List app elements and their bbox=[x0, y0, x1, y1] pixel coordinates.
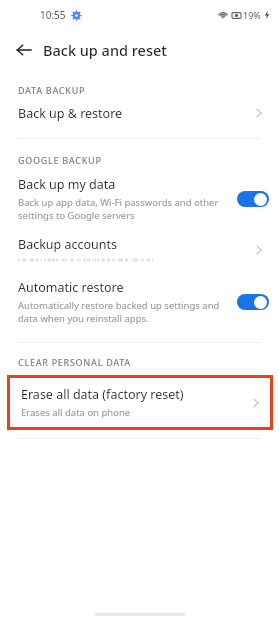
button[interactable]: Toggle bbox=[237, 191, 269, 207]
button[interactable]: Back bbox=[10, 36, 38, 64]
staticText: Back up and reset bbox=[43, 40, 167, 60]
button[interactable]: Back up & restore bbox=[0, 96, 279, 130]
staticText: DATA BACKUP bbox=[18, 84, 86, 96]
staticText: Erase all data (factory reset) bbox=[21, 386, 184, 403]
staticText: Automatically restore backed up settings… bbox=[18, 299, 220, 325]
staticText: Back up my data bbox=[18, 176, 116, 193]
staticText: CLEAR PERSONAL DATA bbox=[18, 356, 131, 368]
button[interactable]: Toggle bbox=[237, 294, 269, 310]
staticText: Back up app data, Wi-Fi passwords and ot… bbox=[18, 196, 219, 222]
button[interactable]: Automatic restore bbox=[0, 279, 279, 325]
button[interactable]: Back up my data bbox=[0, 166, 279, 228]
staticText: GOOGLE BACKUP bbox=[18, 154, 102, 166]
staticText: Back up & restore bbox=[18, 105, 251, 122]
staticText: Backup accounts bbox=[18, 236, 118, 253]
staticText: 19% bbox=[243, 9, 261, 21]
button[interactable]: Erase all data (factory reset) bbox=[10, 378, 270, 427]
staticText: Erases all data on phone bbox=[21, 406, 131, 419]
staticText: Automatic restore bbox=[18, 279, 124, 296]
button[interactable]: Backup accounts bbox=[0, 236, 279, 263]
staticText: 10:55 bbox=[40, 8, 66, 22]
